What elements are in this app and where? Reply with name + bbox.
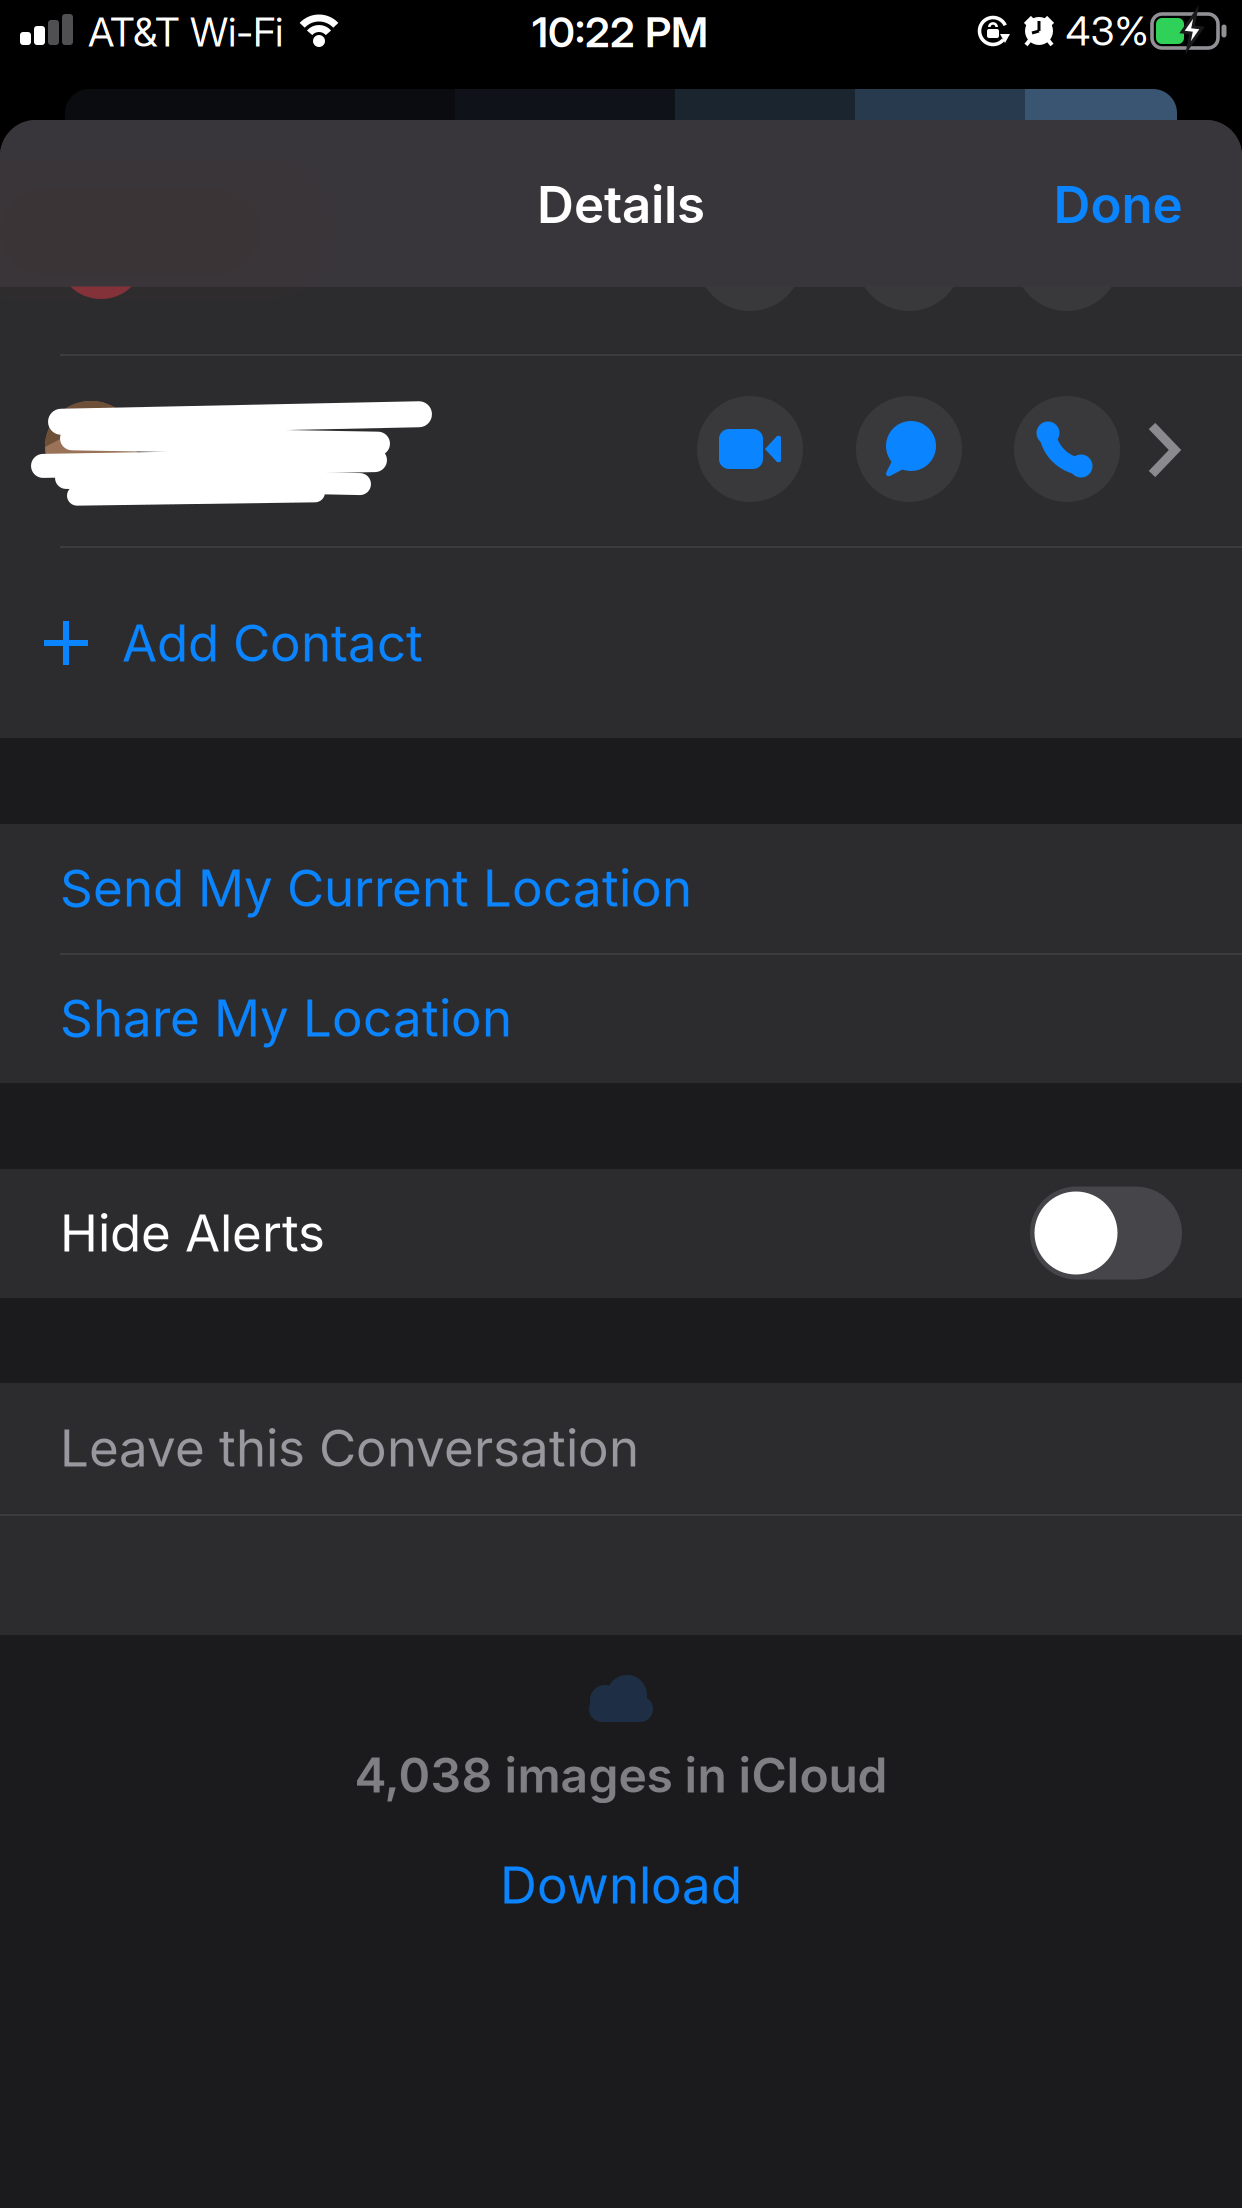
button[interactable]: Hide Alerts: [0, 1169, 1242, 1297]
button[interactable]: Download: [500, 1854, 742, 1916]
button[interactable]: Hide Alerts: [1030, 1186, 1182, 1279]
staticText: Send My Current Location: [60, 857, 692, 919]
staticText: Details: [537, 174, 705, 235]
button[interactable]: Send My Current Location: [0, 824, 1242, 952]
button[interactable]: FaceTime video: [697, 396, 803, 502]
staticText: Download: [500, 1854, 742, 1916]
button[interactable]: Contact info: [1149, 423, 1179, 477]
staticText: 43%: [1065, 7, 1148, 55]
staticText: Hide Alerts: [60, 1202, 325, 1264]
staticText: 4,038 images in iCloud: [354, 1746, 887, 1804]
button[interactable]: Done: [1053, 174, 1182, 235]
staticText: AT&T Wi-Fi: [88, 8, 283, 56]
button[interactable]: Call: [1014, 396, 1120, 502]
staticText: Share My Location: [60, 987, 512, 1049]
button[interactable]: Message: [856, 396, 962, 502]
staticText: 10:22 PM: [532, 7, 708, 57]
button[interactable]: Add Contact: [0, 548, 1242, 738]
staticText: Leave this Conversation: [60, 1417, 639, 1479]
staticText: Add Contact: [122, 612, 423, 674]
button[interactable]: Share My Location: [0, 954, 1242, 1082]
staticText: Done: [1053, 174, 1182, 235]
button[interactable]: Leave this Conversation: [0, 1384, 1242, 1512]
